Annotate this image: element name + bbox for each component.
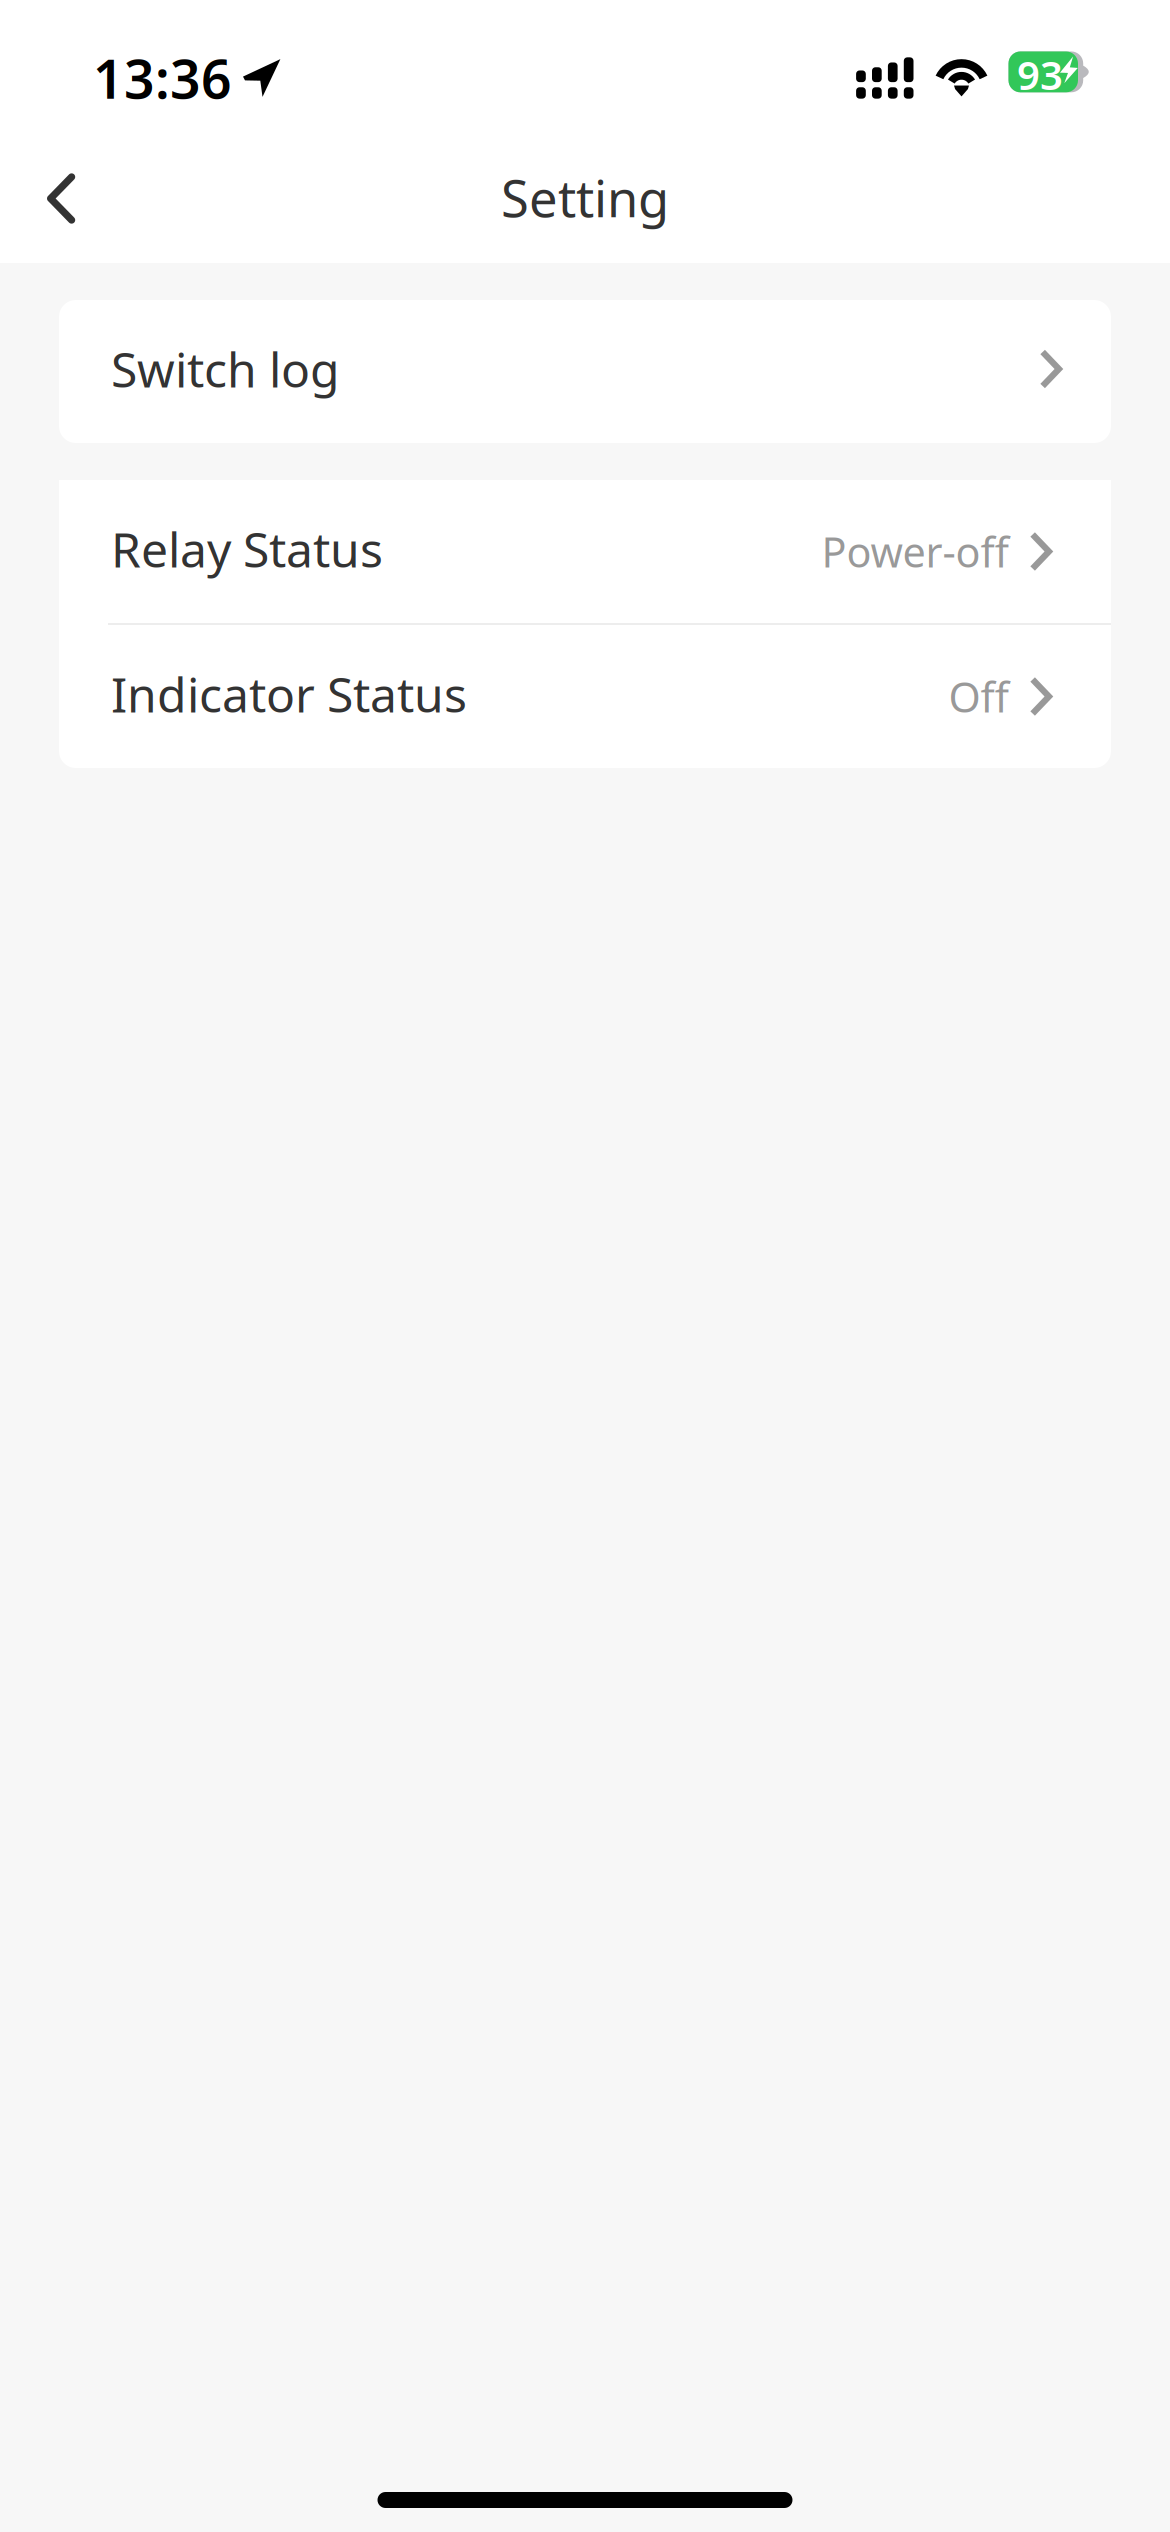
staticText: Off (948, 669, 1008, 724)
button[interactable]: Indicator Status (59, 625, 1111, 768)
button[interactable]: Back (0, 143, 107, 260)
staticText: Power-off (821, 524, 1008, 579)
staticText: Switch log (111, 337, 340, 401)
staticText: Indicator Status (111, 662, 467, 726)
staticText: 13:36 (93, 43, 232, 113)
staticText: Setting (501, 164, 669, 231)
button[interactable]: Switch log (59, 300, 1111, 443)
button[interactable]: Relay Status (59, 480, 1111, 623)
staticText: Relay Status (111, 517, 383, 581)
staticText: 93 (1017, 48, 1063, 101)
